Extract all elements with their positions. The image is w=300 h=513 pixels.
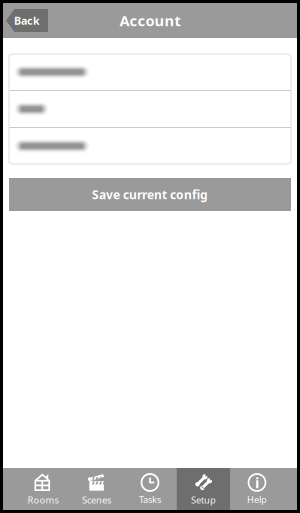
button[interactable]: Save current config xyxy=(9,178,291,211)
staticText: Help xyxy=(247,493,267,506)
staticText: Scenes xyxy=(82,494,111,506)
button[interactable]: Setup xyxy=(177,468,230,510)
button[interactable]: Scenes xyxy=(70,468,123,510)
staticText: Setup xyxy=(191,494,216,506)
staticText: Account xyxy=(119,11,180,30)
staticText: Back xyxy=(14,13,40,28)
staticText: Rooms xyxy=(27,494,58,506)
staticText: i xyxy=(255,473,259,492)
staticText: Tasks xyxy=(139,493,161,506)
button[interactable]: i xyxy=(230,468,284,510)
button[interactable]: Back xyxy=(6,9,48,32)
button[interactable]: Tasks xyxy=(123,468,177,510)
button[interactable]: Rooms xyxy=(16,468,70,510)
staticText: Save current config xyxy=(92,186,208,202)
